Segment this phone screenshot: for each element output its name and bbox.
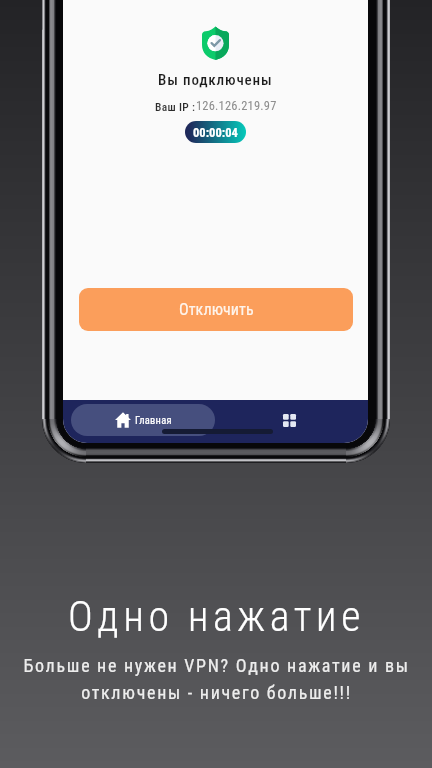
staticText: Ваш IP : bbox=[155, 100, 196, 113]
staticText: Главная bbox=[135, 414, 172, 426]
staticText: 00:00:04 bbox=[193, 125, 238, 140]
button[interactable]: Отключить bbox=[79, 288, 353, 331]
button[interactable]: Apps bbox=[276, 407, 302, 433]
staticText: 126.126.219.97 bbox=[196, 98, 277, 113]
button[interactable]: Главная bbox=[71, 404, 215, 436]
staticText: Вы подключены bbox=[158, 71, 273, 89]
staticText: Отключить bbox=[179, 300, 254, 319]
staticText: Больше не нужен VPN? Одно нажатие и вы о… bbox=[23, 655, 410, 703]
staticText: Одно нажатие bbox=[68, 592, 365, 641]
